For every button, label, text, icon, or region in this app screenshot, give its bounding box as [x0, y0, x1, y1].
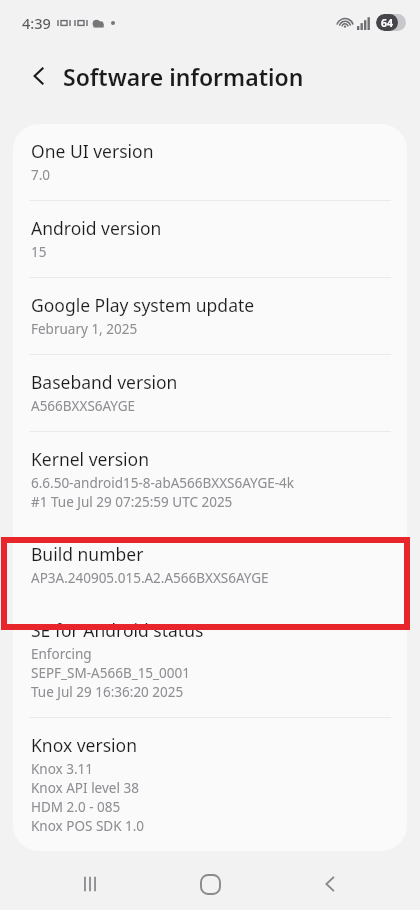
button[interactable]: Home [180, 858, 240, 910]
staticText: Android version [31, 216, 162, 240]
button[interactable]: Google Play system update [13, 278, 407, 354]
staticText: #1 Tue Jul 29 07:25:59 UTC 2025 [31, 493, 233, 511]
button[interactable]: Knox version [13, 718, 407, 851]
button[interactable]: SE for Android status [13, 603, 407, 717]
staticText: One UI version [31, 139, 154, 163]
staticText: SEPF_SM-A566B_15_0001 [31, 664, 190, 682]
staticText: Knox 3.11 [31, 760, 94, 778]
staticText: AP3A.240905.015.A2.A566BXXS6AYGE [31, 569, 269, 587]
staticText: SE for Android status [31, 618, 204, 642]
staticText: HDM 2.0 - 085 [31, 798, 121, 816]
button[interactable]: Baseband version [13, 355, 407, 431]
staticText: 7.0 [31, 166, 51, 184]
button[interactable]: Back [17, 54, 61, 98]
staticText: Enforcing [31, 645, 92, 663]
staticText: Google Play system update [31, 293, 255, 317]
staticText: Baseband version [31, 370, 178, 394]
button[interactable]: Back [300, 858, 360, 910]
staticText: Knox version [31, 733, 137, 757]
staticText: 64 [381, 16, 394, 30]
button[interactable]: Kernel version [13, 432, 407, 527]
staticText: 4:39 [22, 13, 51, 33]
staticText: Software information [63, 61, 304, 92]
button[interactable]: One UI version [13, 124, 407, 200]
staticText: Kernel version [31, 447, 149, 471]
button[interactable]: Build number [13, 527, 407, 603]
staticText: Knox API level 38 [31, 779, 139, 797]
button[interactable]: Recents [60, 858, 120, 910]
staticText: Tue Jul 29 16:36:20 2025 [31, 683, 184, 701]
staticText: 15 [31, 243, 47, 261]
staticText: February 1, 2025 [31, 320, 138, 338]
staticText: A566BXXS6AYGE [31, 397, 136, 415]
staticText: Knox POS SDK 1.0 [31, 817, 145, 835]
button[interactable]: Android version [13, 201, 407, 277]
staticText: Build number [31, 542, 144, 566]
staticText: 6.6.50-android15-8-abA566BXXS6AYGE-4k [31, 474, 295, 492]
